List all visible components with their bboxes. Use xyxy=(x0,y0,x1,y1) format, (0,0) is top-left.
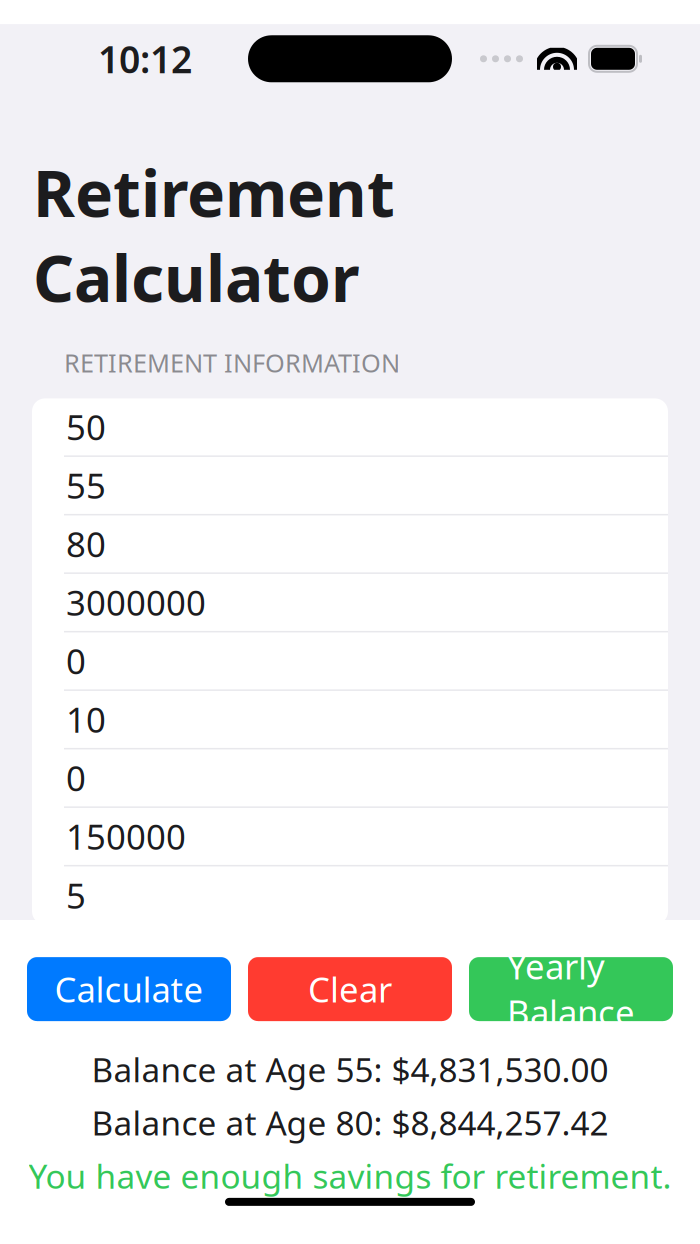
staticText: RETIREMENT INFORMATION xyxy=(64,346,400,379)
button[interactable]: Calculate xyxy=(27,957,231,1021)
staticText: Retirement Calculator xyxy=(33,150,395,320)
staticText: 80 xyxy=(66,521,106,567)
staticText: Calculate xyxy=(54,966,203,1012)
staticText: Balance at Age 80: $8,844,257.42 xyxy=(91,1100,608,1145)
staticText: 0 xyxy=(66,755,86,801)
staticText: 150000 xyxy=(66,813,186,859)
staticText: 5 xyxy=(66,872,86,918)
staticText: 3000000 xyxy=(66,579,206,625)
staticText: 10 xyxy=(66,696,106,742)
staticText: 10:12 xyxy=(98,34,192,84)
button[interactable]: Yearly Balance xyxy=(469,957,673,1021)
staticText: Clear xyxy=(308,966,392,1012)
staticText: 0 xyxy=(66,638,86,684)
staticText: 50 xyxy=(66,404,106,450)
staticText: Balance at Age 55: $4,831,530.00 xyxy=(91,1047,608,1091)
staticText: 55 xyxy=(66,462,106,508)
staticText: Yearly Balance xyxy=(507,943,635,1035)
staticText: You have enough savings for retirement. xyxy=(28,1154,671,1198)
button[interactable]: Clear xyxy=(248,957,452,1021)
